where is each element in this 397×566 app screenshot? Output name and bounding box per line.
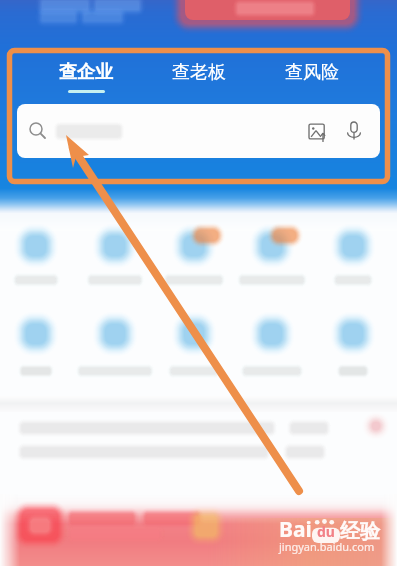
staticText: 查老板 [172, 61, 226, 84]
button[interactable]: 查风险 [255, 59, 369, 95]
staticText: 查企业 [59, 61, 113, 84]
staticText: jingyan.baidu.com [279, 539, 375, 554]
button[interactable]: Image search [17, 104, 380, 158]
button[interactable] [0, 494, 397, 566]
button[interactable]: Voice search [337, 114, 371, 148]
staticText: du [317, 522, 335, 541]
button[interactable]: 查老板 [142, 59, 256, 95]
button[interactable]: 查企业 [29, 59, 143, 95]
button[interactable]: Image search [301, 114, 335, 148]
staticText: Bai [279, 515, 312, 544]
staticText: 查风险 [285, 61, 339, 84]
staticText: 经验 [340, 519, 380, 544]
